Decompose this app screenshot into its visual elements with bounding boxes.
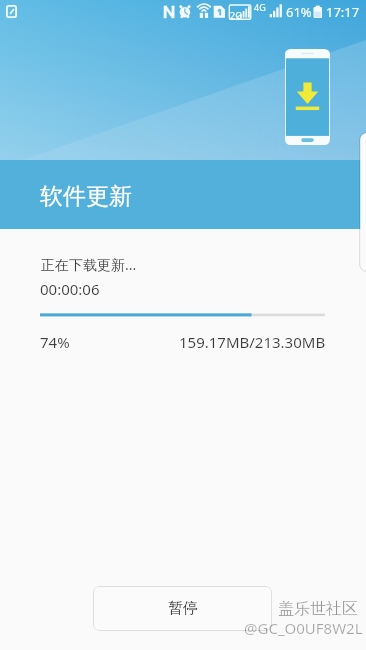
staticText: 74% — [40, 332, 70, 352]
staticText: 00:00:06 — [40, 279, 100, 299]
staticText: 61% — [286, 3, 312, 21]
staticText: 盖乐世社区 — [278, 599, 358, 619]
staticText: 正在下载更新... — [41, 255, 137, 274]
button[interactable]: 暂停 — [93, 586, 272, 631]
staticText: 17:17 — [326, 3, 360, 21]
staticText: 4G — [254, 1, 266, 13]
staticText: 2G — [230, 9, 242, 21]
staticText: @GC_O0UF8W2L — [244, 618, 363, 638]
staticText: 软件更新 — [40, 182, 132, 211]
staticText: 暂停 — [168, 599, 198, 618]
staticText: 159.17MB/213.30MB — [179, 332, 326, 352]
